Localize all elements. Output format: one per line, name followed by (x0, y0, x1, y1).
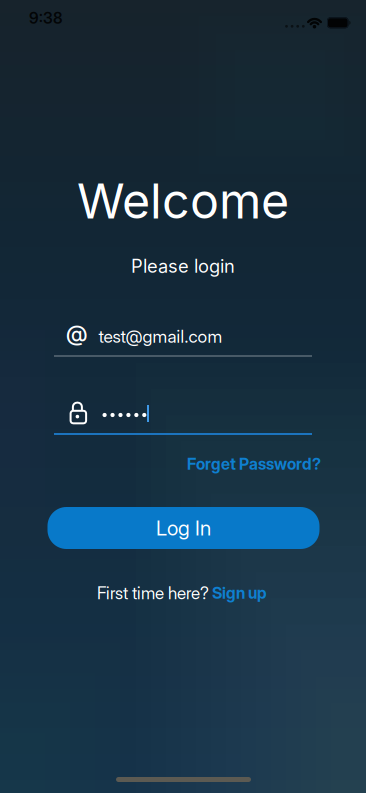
button[interactable]: Sign up (212, 583, 267, 603)
staticText: Please login (131, 255, 235, 277)
staticText: Welcome (77, 172, 289, 230)
button[interactable]: Log In (47, 507, 319, 549)
staticText: First time here? (97, 583, 209, 603)
staticText: Sign up (212, 583, 267, 603)
staticText: Forget Password? (187, 454, 321, 474)
staticText: @ (66, 320, 87, 347)
staticText: 9:38 (29, 8, 62, 27)
button[interactable]: Password (54, 390, 312, 436)
button[interactable]: Forget Password? (187, 454, 321, 474)
staticText: test@gmail.com (99, 326, 223, 347)
staticText: Log In (156, 516, 211, 540)
button[interactable]: Email (54, 312, 312, 357)
